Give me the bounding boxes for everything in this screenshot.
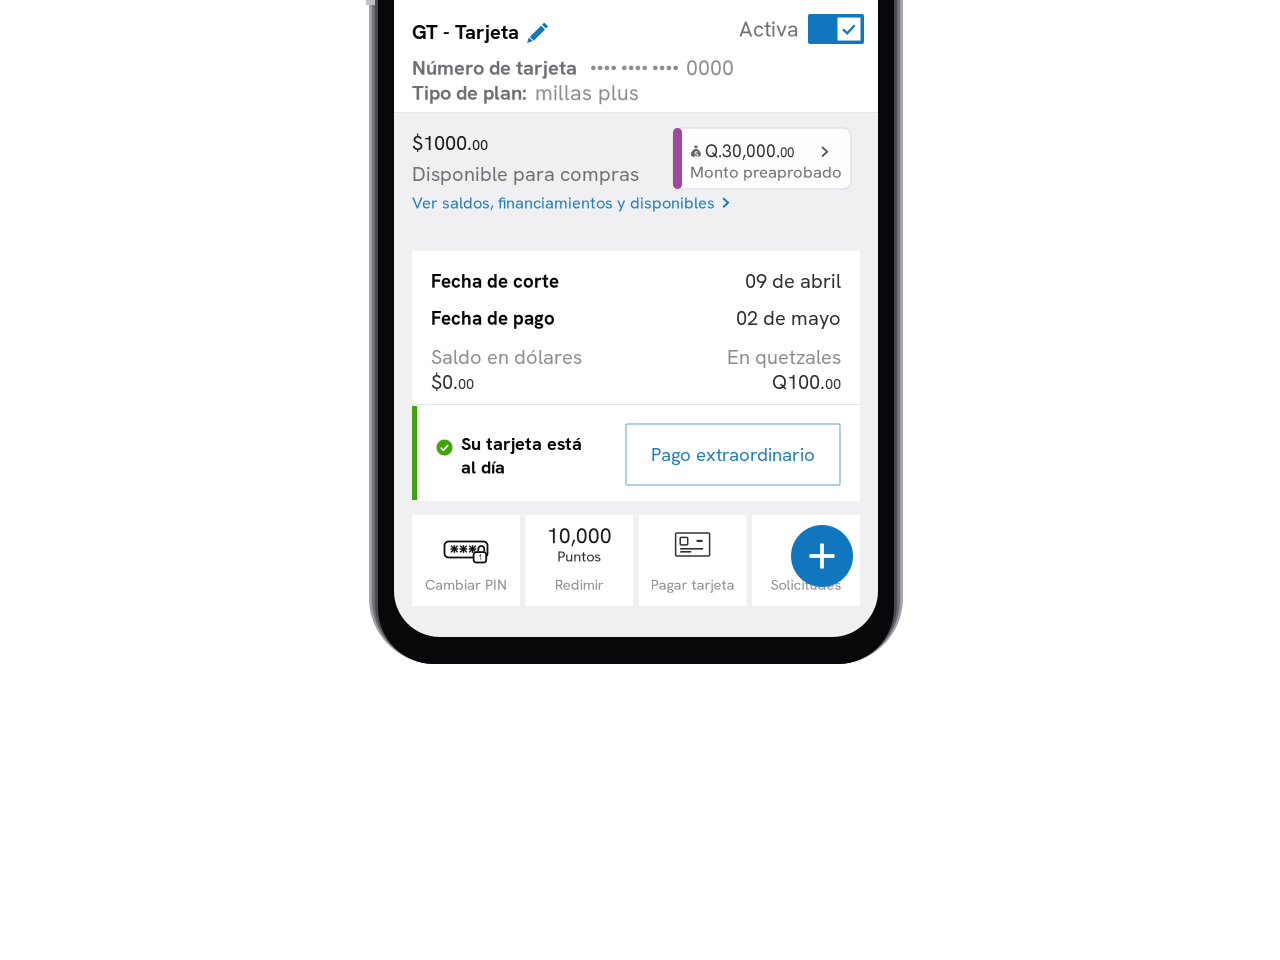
staticText: Número de tarjeta — [412, 55, 577, 81]
button[interactable]: GT - Tarjeta — [412, 19, 548, 45]
staticText: Redimir — [555, 575, 604, 594]
staticText: Fecha de corte — [431, 269, 559, 293]
button[interactable]: Tarjeta activa — [739, 14, 864, 44]
staticText: 09 de abril — [745, 268, 841, 294]
staticText: millas plus — [535, 79, 639, 107]
staticText: Cambiar PIN — [425, 575, 507, 594]
staticText: Q100. — [772, 369, 825, 395]
staticText: Saldo en dólares — [431, 344, 582, 370]
button[interactable]: Monto preaprobado — [673, 128, 851, 189]
staticText: Activa — [739, 15, 799, 43]
staticText: 10,000 — [547, 522, 612, 550]
staticText: S — [694, 149, 699, 159]
staticText: 0000 — [686, 54, 734, 82]
staticText: Tipo de plan: — [412, 80, 527, 106]
staticText: 02 de mayo — [736, 305, 841, 331]
staticText: 00 — [825, 374, 841, 393]
staticText: Q.30,000. — [705, 140, 780, 163]
staticText: 00 — [458, 374, 474, 393]
staticText: 00 — [780, 144, 794, 161]
staticText: Disponible para compras — [412, 161, 639, 187]
staticText: $1000. — [412, 130, 472, 156]
staticText: $0. — [431, 369, 458, 395]
staticText: 00 — [472, 135, 488, 154]
staticText: GT - Tarjeta — [412, 19, 519, 45]
staticText: Puntos — [557, 547, 601, 566]
staticText: Pagar tarjeta — [651, 575, 735, 594]
staticText: En quetzales — [727, 344, 841, 370]
staticText: Ver saldos, financiamientos y disponible… — [412, 192, 715, 213]
staticText: Solicitudes — [770, 575, 841, 594]
staticText: Fecha de pago — [431, 306, 555, 330]
button[interactable]: 10,000 — [525, 515, 633, 606]
staticText: Su tarjeta está al día — [461, 432, 582, 479]
button[interactable]: Cambiar PIN — [412, 515, 520, 606]
button[interactable]: Nueva solicitud — [791, 525, 853, 587]
staticText: Pago extraordinario — [651, 442, 815, 467]
button[interactable]: Pagar tarjeta — [639, 515, 747, 606]
button[interactable]: Solicitudes — [752, 515, 860, 606]
button[interactable]: Ver saldos, financiamientos y disponible… — [412, 192, 729, 213]
button[interactable]: Pago extraordinario — [626, 424, 840, 485]
staticText: Monto preaprobado — [690, 161, 842, 183]
